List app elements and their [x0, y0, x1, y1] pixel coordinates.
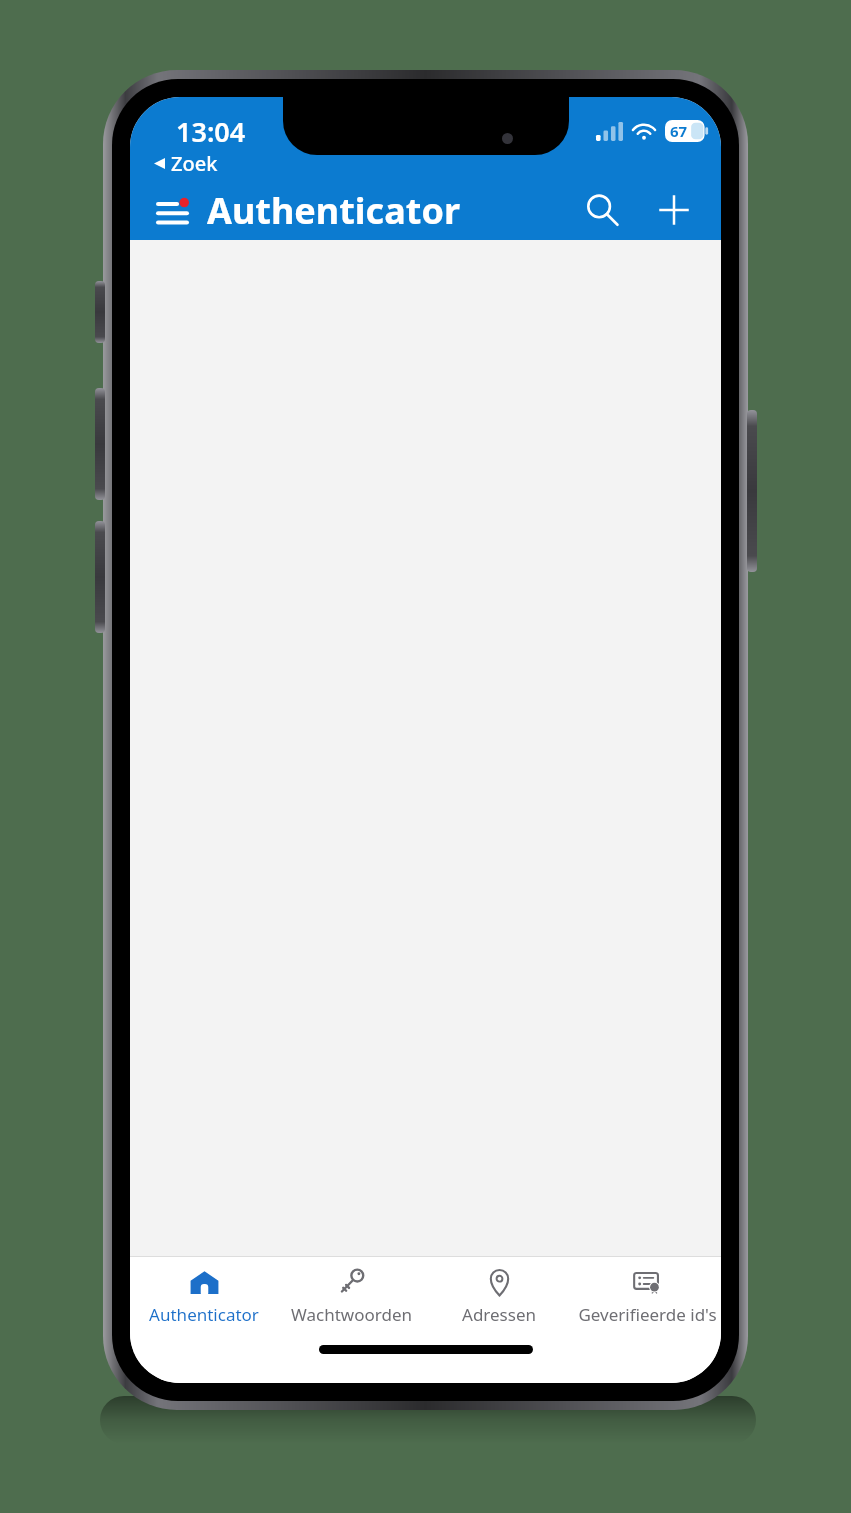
button[interactable]: Menu [147, 185, 197, 235]
staticText: Geverifieerde id's [578, 1303, 717, 1326]
staticText: 67 [670, 121, 688, 141]
button[interactable]: Geverifieerde id's [573, 1257, 721, 1326]
staticText: Authenticator [207, 186, 460, 235]
staticText: Adressen [462, 1303, 536, 1326]
button[interactable]: Zoek [148, 146, 224, 181]
staticText: Authenticator [149, 1303, 259, 1326]
staticText: Wachtwoorden [291, 1303, 412, 1326]
button[interactable]: Authenticator [130, 1257, 277, 1326]
button[interactable]: Wachtwoorden [277, 1257, 425, 1326]
button[interactable]: Adressen [425, 1257, 573, 1326]
staticText: Zoek [171, 150, 218, 177]
button[interactable]: Search [575, 183, 629, 237]
button[interactable]: Add [647, 183, 701, 237]
staticText: 13:04 [176, 113, 246, 150]
